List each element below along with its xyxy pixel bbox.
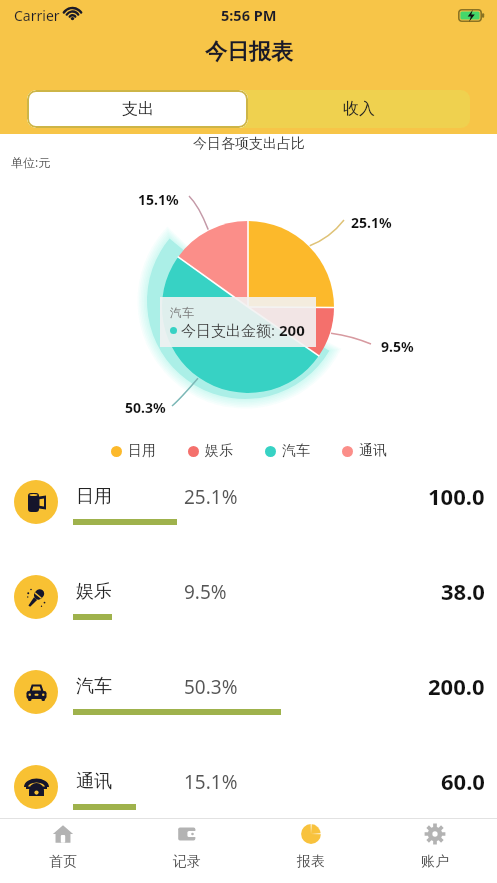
staticText: 支出 (122, 99, 154, 119)
staticText: 单位:元 (11, 154, 51, 170)
button[interactable]: 收入 (248, 90, 470, 128)
staticText: 娱乐 (76, 580, 112, 603)
staticText: 50.3% (125, 398, 166, 417)
staticText: 首页 (49, 853, 77, 871)
button[interactable]: 首页 (0, 819, 125, 883)
staticText: 记录 (173, 853, 201, 871)
staticText: 50.3% (184, 674, 238, 700)
staticText: 9.5% (184, 579, 227, 605)
staticText: 38.0 (441, 576, 485, 606)
staticText: 200.0 (428, 671, 485, 701)
staticText: 200 (279, 320, 305, 340)
staticText: 日用 (76, 485, 112, 508)
staticText: 通讯 (359, 442, 387, 460)
other: Wifi (64, 6, 81, 23)
button[interactable]: 汽车 (265, 442, 310, 460)
staticText: 25.1% (351, 213, 392, 232)
button[interactable]: 记录 (125, 819, 249, 883)
staticText: Carrier (14, 6, 60, 25)
button[interactable]: 日用 (111, 442, 156, 460)
button[interactable]: 汽车 (0, 645, 497, 740)
button[interactable]: 通讯 (0, 740, 497, 835)
staticText: 今日报表 (205, 38, 293, 66)
staticText: 娱乐 (205, 442, 233, 460)
staticText: 15.1% (184, 769, 238, 795)
staticText: 9.5% (381, 337, 414, 356)
staticText: 今日各项支出占比 (193, 135, 305, 153)
staticText: 15.1% (138, 190, 179, 209)
staticText: 100.0 (428, 481, 485, 511)
staticText: 收入 (343, 99, 375, 119)
button[interactable]: 账户 (373, 819, 497, 883)
button[interactable]: 报表 (249, 819, 373, 883)
staticText: 汽车 (76, 675, 112, 698)
button[interactable]: 日用 (0, 455, 497, 550)
button[interactable]: 通讯 (342, 442, 387, 460)
button[interactable]: 娱乐 (188, 442, 233, 460)
button[interactable]: 支出 (27, 90, 248, 128)
staticText: 25.1% (184, 484, 238, 510)
staticText: 60.0 (441, 766, 485, 796)
other: Battery charging (458, 9, 485, 22)
staticText: 报表 (297, 853, 325, 871)
button[interactable]: 娱乐 (0, 550, 497, 645)
staticText: 通讯 (76, 770, 112, 793)
staticText: 日用 (128, 442, 156, 460)
staticText: 账户 (421, 853, 449, 871)
staticText: 汽车 (170, 305, 194, 320)
staticText: 5:56 PM (221, 5, 277, 25)
staticText: 汽车 (282, 442, 310, 460)
staticText: 今日支出金额: (181, 320, 279, 340)
